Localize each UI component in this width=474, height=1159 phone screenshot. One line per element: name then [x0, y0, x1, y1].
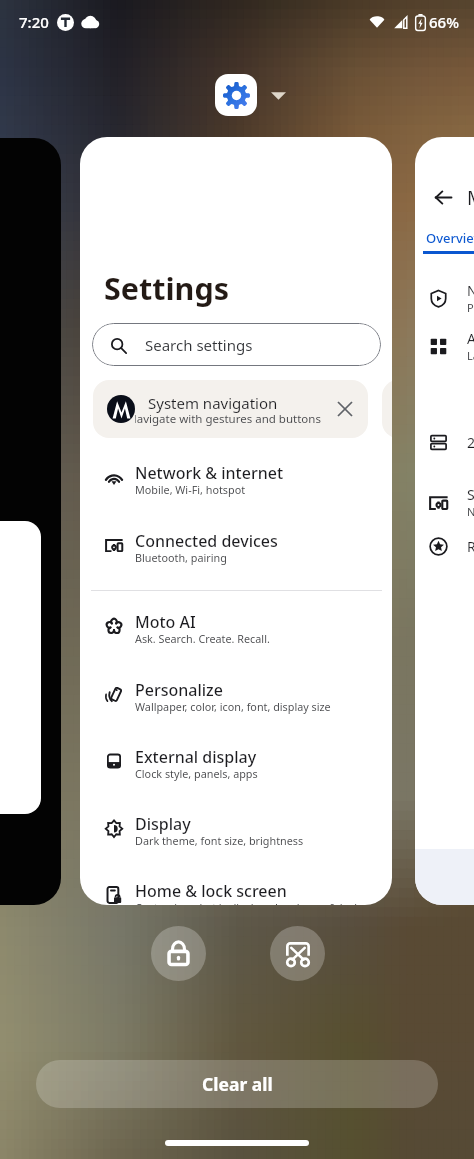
staticText: Navigate with gestures and buttons: [135, 411, 321, 427]
button[interactable]: App options menu: [267, 84, 289, 106]
staticText: Clock style, panels, apps: [135, 766, 258, 781]
button[interactable]: Network & internet: [80, 462, 392, 508]
staticText: Customize what is displayed on home & lo…: [135, 900, 360, 905]
staticText: System navigation: [148, 393, 278, 413]
staticText: Display: [135, 813, 191, 835]
button[interactable]: Home & lock screen: [80, 880, 392, 905]
button[interactable]: Display: [80, 813, 392, 859]
staticText: Sound: [467, 485, 474, 504]
staticText: Clear all: [202, 1072, 273, 1096]
button[interactable]: External display: [80, 746, 392, 792]
button[interactable]: Personalize: [80, 679, 392, 725]
staticText: Dark theme, font size, brightness: [135, 833, 304, 848]
staticText: Manage: [467, 185, 474, 211]
button[interactable]: Lock app: [151, 926, 206, 981]
staticText: Personalize: [135, 679, 223, 701]
button[interactable]: Previous app: [0, 138, 61, 905]
staticText: 7:20: [19, 12, 49, 32]
staticText: Notifications: [467, 281, 474, 300]
staticText: Moto AI: [135, 611, 196, 633]
button[interactable]: Screenshot: [270, 926, 325, 981]
button[interactable]: Next app: [415, 137, 474, 905]
button[interactable]: Moto AI: [80, 611, 392, 657]
staticText: Apps: [467, 329, 474, 348]
staticText: Network & internet: [135, 462, 284, 484]
staticText: Now: [467, 504, 474, 519]
staticText: Ask. Search. Create. Recall.: [135, 631, 270, 646]
staticText: Settings: [104, 267, 230, 309]
staticText: Protection: [467, 300, 474, 315]
staticText: Home & lock screen: [135, 880, 287, 902]
staticText: Overview: [426, 229, 474, 247]
staticText: Recommended: [467, 537, 474, 556]
button[interactable]: Search settings: [92, 323, 381, 366]
staticText: Last opened: [467, 348, 474, 363]
staticText: Connected devices: [135, 530, 278, 552]
staticText: Bluetooth, pairing: [135, 550, 227, 565]
button[interactable]: Dismiss suggestion: [332, 396, 358, 422]
staticText: External display: [135, 746, 257, 768]
staticText: 66%: [429, 12, 459, 32]
button[interactable]: Connected devices: [80, 530, 392, 576]
staticText: 25 GB: [467, 433, 474, 452]
staticText: Wallpaper, color, icon, font, display si…: [135, 699, 331, 714]
button[interactable]: Back: [429, 183, 457, 211]
button[interactable]: Clear all: [36, 1060, 438, 1108]
button[interactable]: Settings app: [80, 137, 392, 905]
button[interactable]: Settings app icon: [215, 74, 257, 116]
button[interactable]: System navigation: [93, 380, 368, 438]
staticText: Search settings: [145, 335, 253, 355]
staticText: Mobile, Wi-Fi, hotspot: [135, 482, 246, 497]
